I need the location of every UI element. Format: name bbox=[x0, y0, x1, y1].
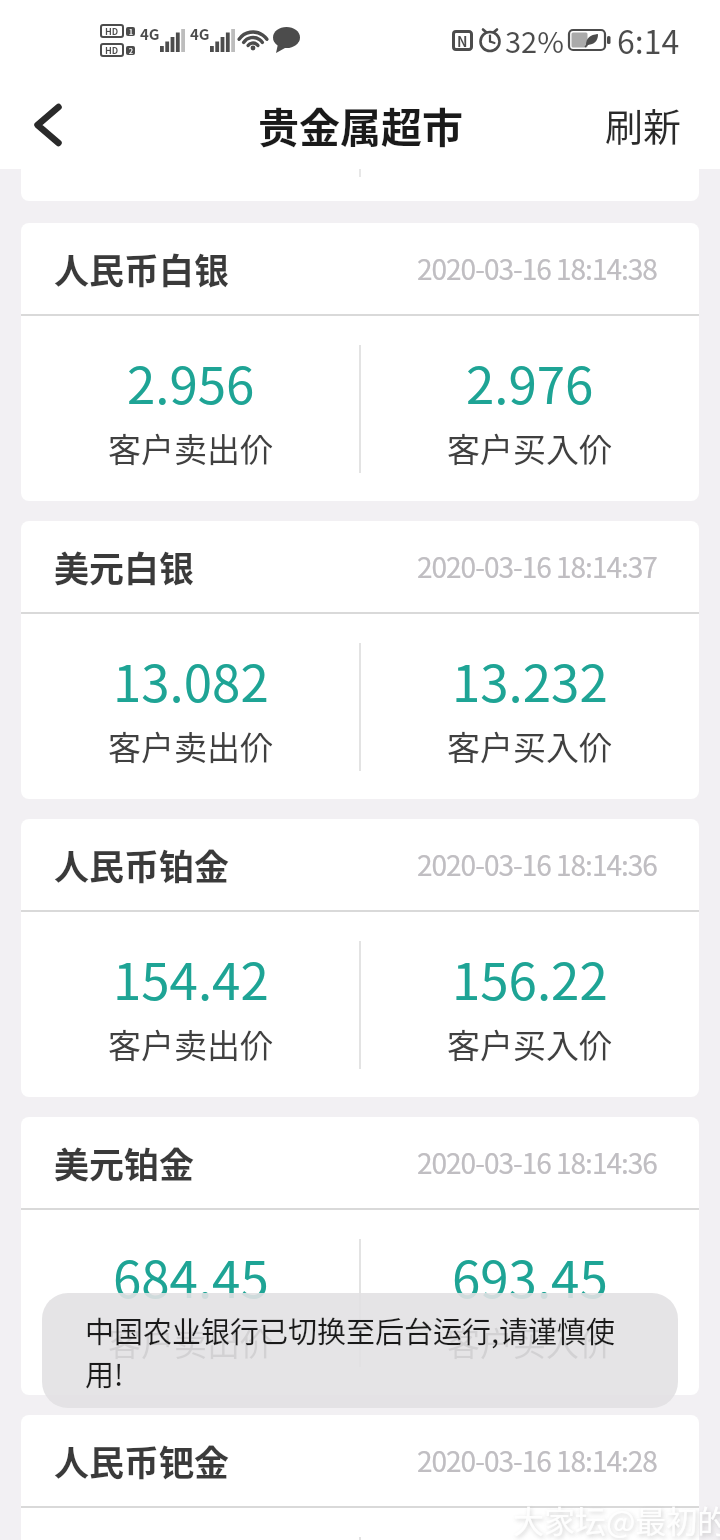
staticText: 客户买入价 bbox=[447, 1020, 612, 1068]
staticText: 13.082 bbox=[113, 643, 269, 717]
staticText: 13.232 bbox=[452, 643, 608, 717]
staticText: 2020-03-16 18:14:37 bbox=[417, 546, 657, 587]
staticText: 156.22 bbox=[452, 941, 608, 1015]
button[interactable]: 美元铂金 bbox=[21, 1117, 699, 1395]
staticText: 美元铂金 bbox=[54, 1137, 195, 1188]
staticText: N bbox=[457, 31, 468, 51]
staticText: 人民币铂金 bbox=[54, 839, 230, 890]
staticText: HD bbox=[105, 44, 119, 57]
staticText: 美元白银 bbox=[54, 541, 195, 592]
button[interactable]: 美元白银 bbox=[21, 521, 699, 799]
staticText: 客户卖出价 bbox=[108, 424, 273, 472]
staticText: 2020-03-16 18:14:36 bbox=[417, 1142, 657, 1183]
button[interactable]: 人民币白银 bbox=[21, 223, 699, 501]
staticText: 2.976 bbox=[466, 345, 594, 419]
staticText: 人民币钯金 bbox=[54, 1435, 230, 1486]
staticText: 客户买入价 bbox=[447, 424, 612, 472]
staticText: 人民币白银 bbox=[54, 243, 230, 294]
staticText: 客户买入价 bbox=[447, 1318, 612, 1366]
staticText: 2020-03-16 18:14:38 bbox=[417, 248, 657, 289]
staticText: 4G bbox=[190, 23, 210, 45]
staticText: 1 bbox=[129, 27, 133, 36]
staticText: 1759.49 bbox=[437, 1537, 622, 1540]
staticText: 684.45 bbox=[113, 1239, 269, 1313]
staticText: 2020-03-16 18:14:36 bbox=[417, 844, 657, 885]
staticText: 客户买入价 bbox=[447, 722, 612, 770]
button[interactable]: 人民币钯金 bbox=[21, 1415, 699, 1540]
button[interactable]: 刷新 bbox=[605, 97, 682, 152]
staticText: 32% bbox=[505, 19, 564, 61]
staticText: 客户卖出价 bbox=[108, 1318, 273, 1366]
staticText: 693.45 bbox=[452, 1239, 608, 1313]
staticText: 客户卖出价 bbox=[108, 1020, 273, 1068]
button[interactable]: 人民币铂金 bbox=[21, 819, 699, 1097]
staticText: 2 bbox=[129, 46, 133, 55]
staticText: 4G bbox=[140, 23, 160, 45]
staticText: 2.956 bbox=[127, 345, 255, 419]
staticText: 6:14 bbox=[617, 17, 680, 63]
staticText: 中国农业银行已切换至后台运行,请谨慎使 用! bbox=[85, 1309, 616, 1395]
staticText: 贵金属超市 bbox=[258, 95, 463, 154]
staticText: 刷新 bbox=[605, 97, 682, 152]
staticText: 大家坛@最初的花 bbox=[513, 1497, 720, 1540]
staticText: 154.42 bbox=[113, 941, 269, 1015]
staticText: 客户卖出价 bbox=[108, 722, 273, 770]
staticText: HD bbox=[105, 25, 119, 38]
staticText: 2020-03-16 18:14:28 bbox=[417, 1440, 657, 1481]
button[interactable] bbox=[20, 97, 76, 153]
